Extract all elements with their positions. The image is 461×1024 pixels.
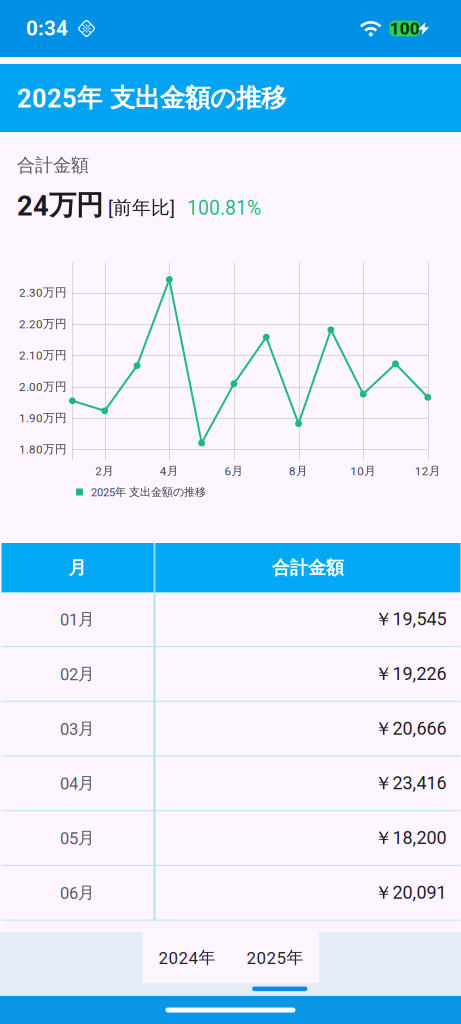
staticText: 4月 xyxy=(160,464,179,478)
staticText: ￥23,416 xyxy=(374,772,446,795)
staticText: 合計金額 xyxy=(17,154,89,177)
staticText: 2.00万円 xyxy=(19,379,67,394)
staticText: 2024年 xyxy=(158,947,215,968)
button[interactable]: 2025年 xyxy=(231,932,319,983)
staticText: 2.10万円 xyxy=(19,348,67,362)
staticText: 100.81% xyxy=(187,197,261,219)
staticText: ￥20,666 xyxy=(374,717,446,740)
staticText: 10月 xyxy=(350,464,376,478)
staticText: 1.80万円 xyxy=(19,442,67,456)
staticText: 06月 xyxy=(60,882,95,903)
staticText: 2025年 xyxy=(246,947,303,968)
staticText: ￥19,226 xyxy=(374,663,446,685)
staticText: [前年比] xyxy=(108,196,175,219)
staticText: 2月 xyxy=(95,464,114,478)
staticText: 2025年 支出金額の推移 xyxy=(17,82,286,114)
staticText: ￥20,091 xyxy=(374,881,446,904)
staticText: 100 xyxy=(390,18,420,39)
staticText: 2025年 支出金額の推移 xyxy=(91,485,206,499)
staticText: 2.20万円 xyxy=(19,316,67,331)
staticText: 2.30万円 xyxy=(19,285,67,300)
staticText: 0:34 xyxy=(26,16,68,41)
staticText: 1.90万円 xyxy=(19,411,67,425)
staticText: ￥19,545 xyxy=(374,608,446,631)
staticText: 6月 xyxy=(224,464,243,478)
button[interactable]: 2024年 xyxy=(143,932,231,983)
staticText: 8月 xyxy=(289,464,308,478)
staticText: 合計金額 xyxy=(272,556,344,579)
staticText: 04月 xyxy=(60,773,95,794)
staticText: 24万円 xyxy=(17,188,103,222)
staticText: 03月 xyxy=(60,718,95,739)
staticText: ￥18,200 xyxy=(374,827,446,849)
staticText: 02月 xyxy=(60,663,95,684)
staticText: 月 xyxy=(68,556,86,579)
staticText: 01月 xyxy=(60,609,95,630)
staticText: 05月 xyxy=(60,828,95,848)
staticText: 12月 xyxy=(415,464,441,478)
